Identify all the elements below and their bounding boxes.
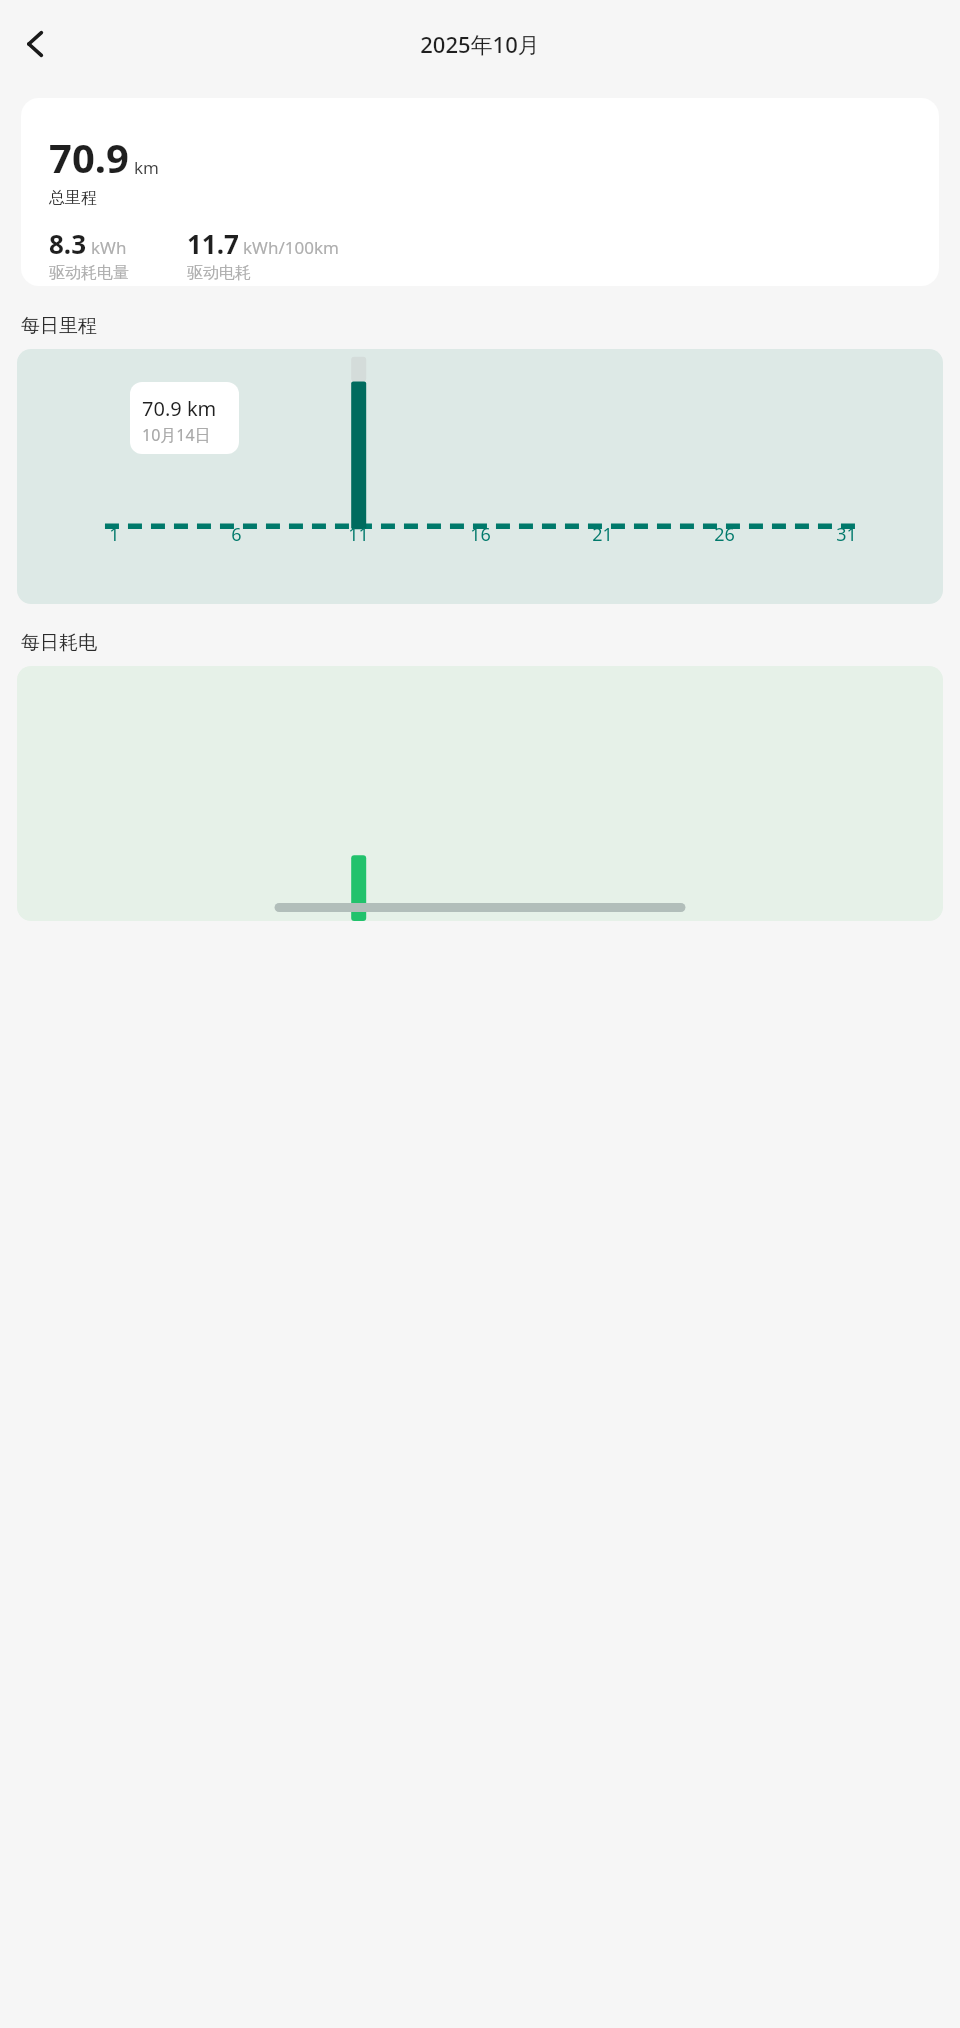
staticText: 26 [714, 522, 735, 547]
staticText: 16 [470, 522, 491, 547]
button[interactable]: 70.9 [21, 98, 939, 286]
staticText: km [134, 156, 159, 179]
staticText: 11 [348, 522, 369, 547]
staticText: 2025年10月 [420, 29, 540, 59]
staticText: 70.9 km [142, 395, 217, 422]
button[interactable]: Back [8, 16, 64, 72]
staticText: 11.7 [187, 226, 239, 261]
staticText: 每日耗电 [21, 631, 97, 655]
staticText: 每日里程 [21, 314, 97, 338]
button[interactable]: 70.9 km [17, 349, 943, 604]
button[interactable] [17, 666, 943, 921]
staticText: 10月14日 [142, 424, 211, 446]
staticText: 70.9 [49, 130, 129, 184]
staticText: 驱动耗电量 [49, 263, 129, 283]
staticText: 6 [231, 522, 242, 547]
staticText: 1 [109, 522, 120, 547]
staticText: 31 [836, 522, 857, 547]
staticText: 8.3 [49, 226, 87, 261]
staticText: 驱动电耗 [187, 263, 251, 283]
staticText: kWh [91, 236, 127, 259]
staticText: 总里程 [49, 188, 97, 208]
staticText: 21 [592, 522, 613, 547]
staticText: kWh/100km [243, 236, 339, 259]
